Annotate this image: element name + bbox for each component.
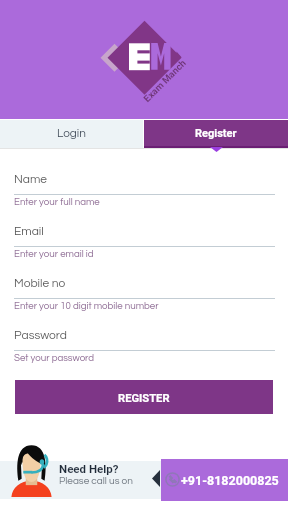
- staticText: Email: [14, 225, 44, 237]
- button[interactable]: Register: [144, 120, 288, 148]
- button[interactable]: Login: [0, 120, 143, 148]
- staticText: Register: [195, 127, 237, 140]
- staticText: +91-8182000825: [181, 473, 279, 488]
- other: Call support: [165, 472, 180, 487]
- button[interactable]: REGISTER: [15, 380, 273, 414]
- staticText: REGISTER: [118, 392, 170, 405]
- staticText: Enter your 10 digit mobile number: [14, 301, 159, 311]
- staticText: Enter your full name: [14, 197, 100, 207]
- staticText: Exam Manch: [141, 57, 188, 104]
- staticText: Mobile no: [14, 277, 66, 289]
- staticText: Enter your email id: [14, 249, 94, 259]
- staticText: Password: [14, 329, 67, 341]
- staticText: Set your password: [14, 353, 95, 363]
- button[interactable]: Call support: [161, 459, 288, 501]
- staticText: Login: [57, 127, 86, 139]
- staticText: Name: [14, 173, 48, 185]
- staticText: Need Help?: [59, 462, 119, 475]
- staticText: Please call us on: [59, 476, 133, 486]
